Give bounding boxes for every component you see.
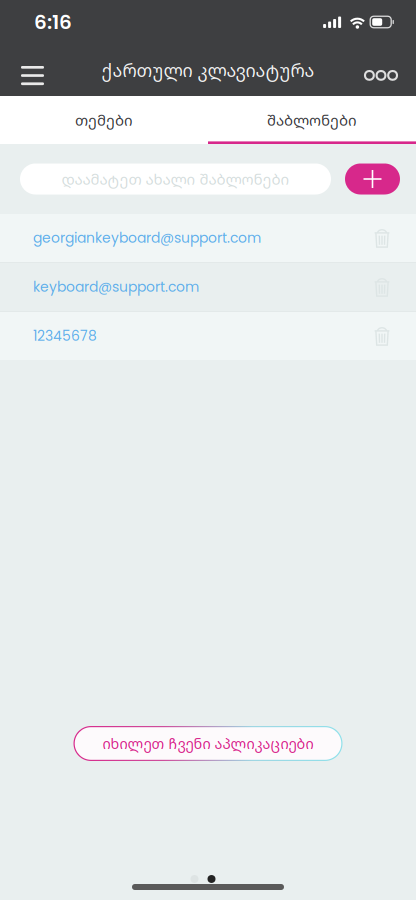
staticText: თემები — [75, 110, 133, 130]
button[interactable]: თემები — [0, 96, 208, 144]
button[interactable]: More options — [352, 44, 407, 96]
button[interactable]: georgiankeyboard@support.com — [0, 214, 416, 262]
button[interactable]: Add template — [345, 163, 400, 194]
staticText: 6:16 — [34, 8, 72, 36]
staticText: georgiankeyboard@support.com — [33, 228, 261, 248]
staticText: იხილეთ ჩვენი აპლიკაციები — [102, 734, 313, 753]
button[interactable]: Delete — [365, 319, 399, 353]
staticText: 12345678 — [33, 326, 97, 346]
staticText: შაბლონები — [267, 110, 357, 130]
button[interactable]: Delete — [365, 270, 399, 304]
button[interactable]: Menu — [5, 44, 60, 96]
staticText: ქართული კლავიატურა — [101, 58, 314, 82]
button[interactable]: დაამატეთ ახალი შაბლონები — [20, 163, 331, 194]
button[interactable]: შაბლონები — [208, 96, 416, 144]
button[interactable]: 12345678 — [0, 312, 416, 360]
staticText: დაამატეთ ახალი შაბლონები — [61, 169, 289, 189]
button[interactable]: იხილეთ ჩვენი აპლიკაციები — [73, 726, 342, 761]
button[interactable]: Delete — [365, 221, 399, 255]
button[interactable]: keyboard@support.com — [0, 263, 416, 311]
staticText: keyboard@support.com — [33, 277, 199, 297]
